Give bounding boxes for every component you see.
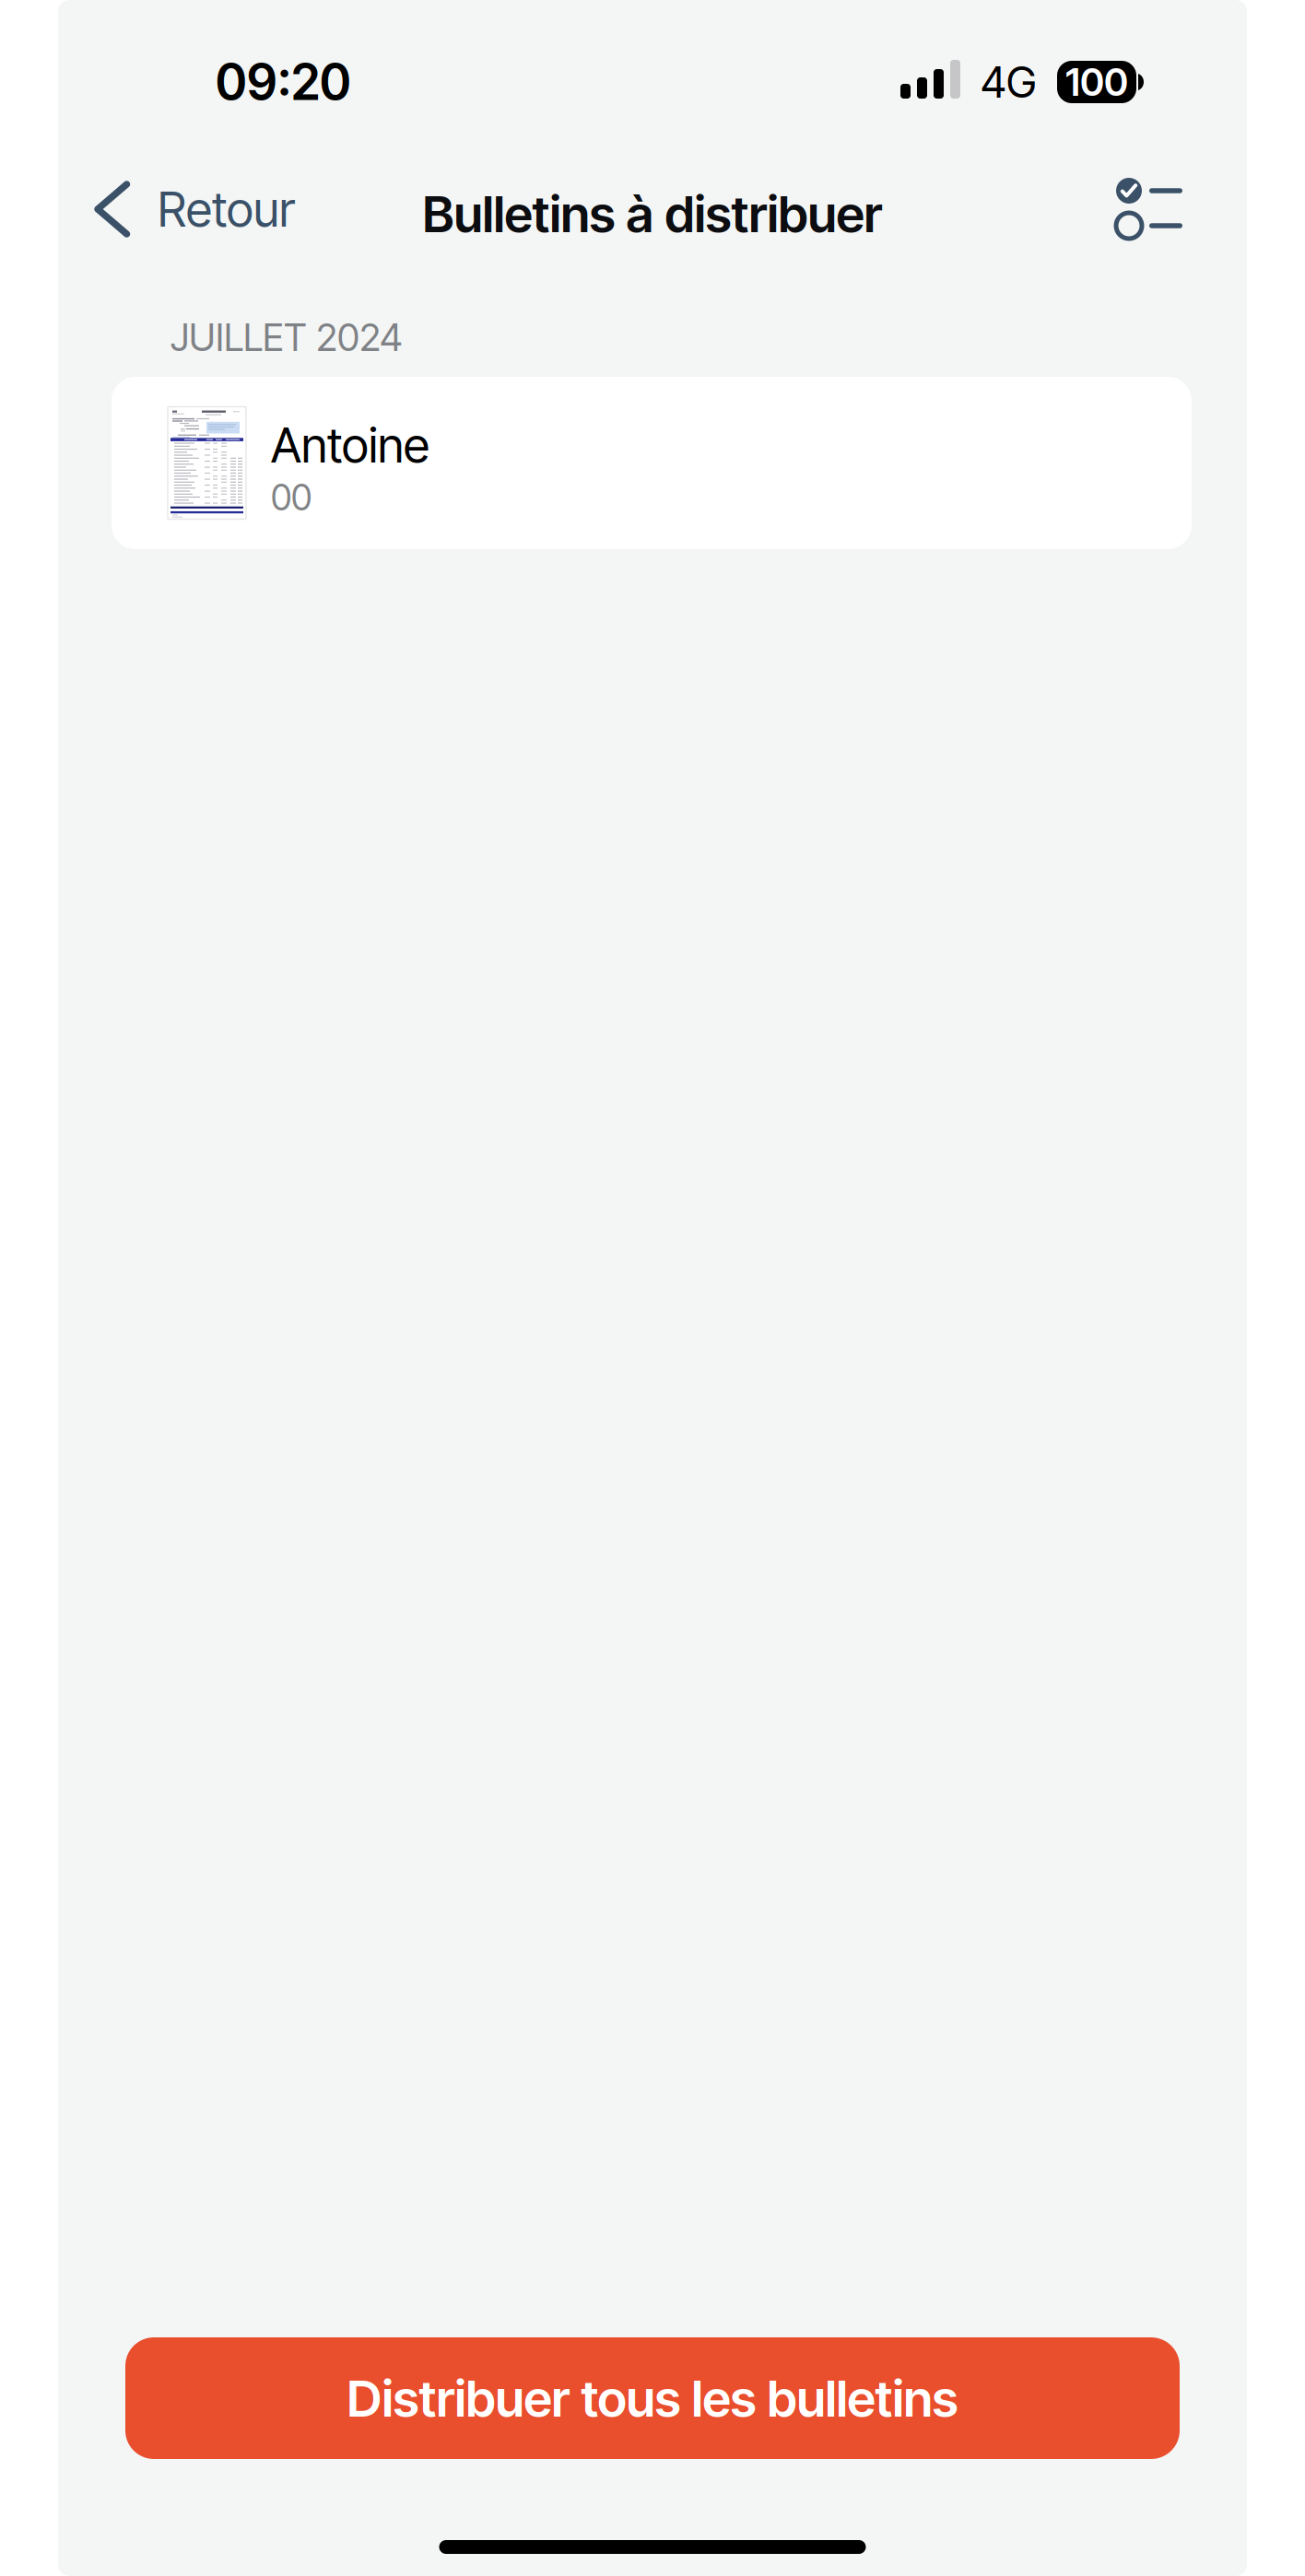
staticText: Distribuer tous les bulletins xyxy=(347,2368,958,2429)
staticText: 09:20 xyxy=(216,52,351,112)
staticText: JUILLET 2024 xyxy=(170,314,403,360)
button[interactable]: Distribuer tous les bulletins xyxy=(125,2337,1180,2459)
staticText: Bulletins à distribuer xyxy=(423,183,882,244)
staticText: Antoine xyxy=(271,416,429,474)
button[interactable]: Sélectionner xyxy=(1116,170,1182,258)
staticText: 4G xyxy=(981,56,1036,108)
staticText: 100 xyxy=(1065,59,1128,105)
staticText: 00 xyxy=(271,476,312,519)
staticText: Retour xyxy=(158,180,295,238)
button[interactable]: Retour xyxy=(91,170,295,258)
button[interactable]: Antoine xyxy=(112,377,1192,549)
